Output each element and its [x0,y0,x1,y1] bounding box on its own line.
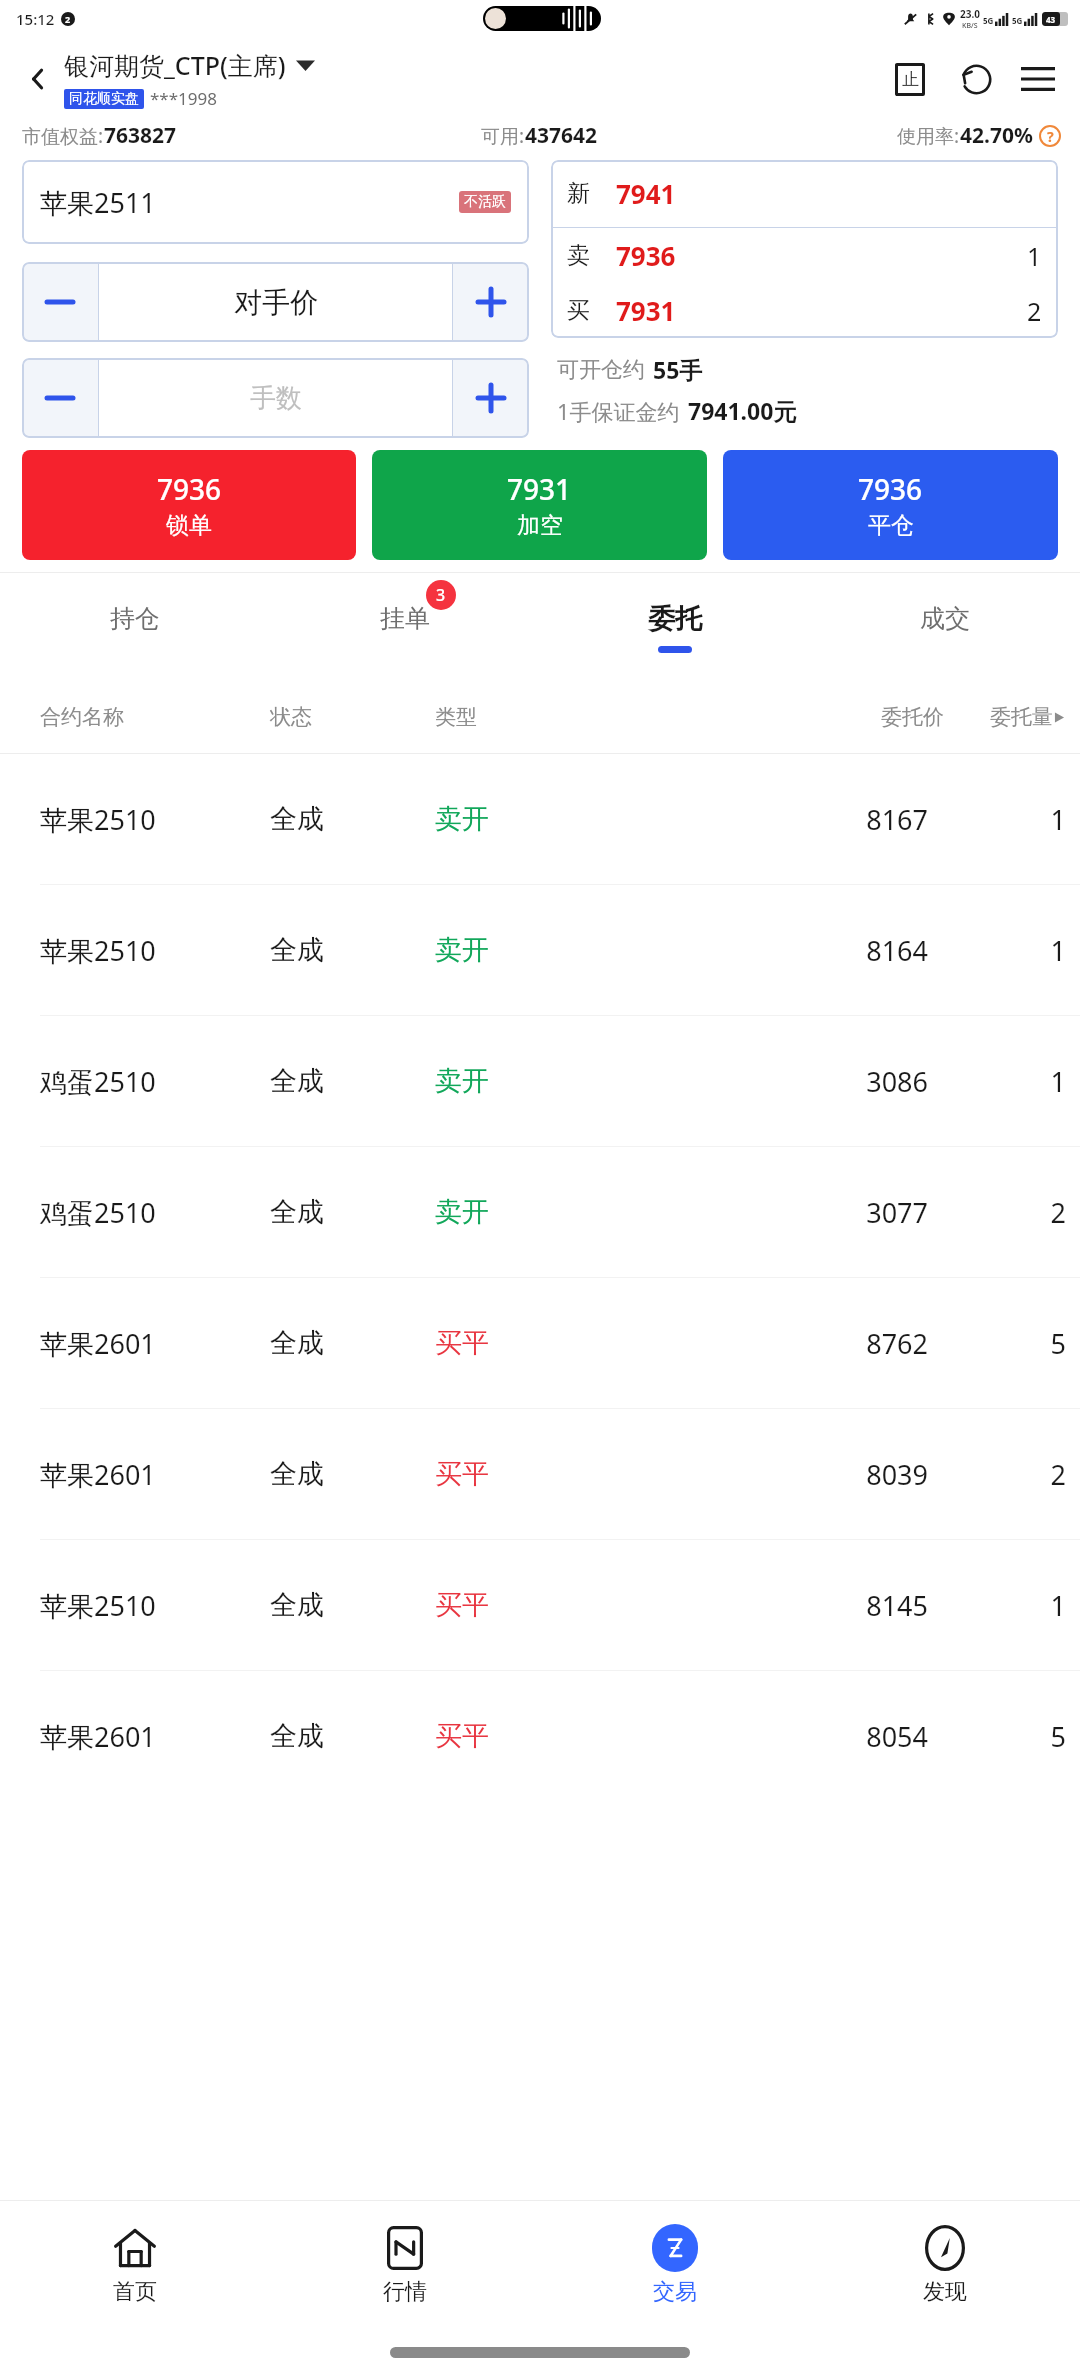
button[interactable]: 苹果2510 [0,754,1080,884]
button[interactable]: 7931 [372,450,707,560]
staticText: 委托量 [990,704,1053,730]
button[interactable]: 苹果2601 [0,1278,1080,1408]
staticText: 8167 [635,801,928,838]
button[interactable]: 鸡蛋2510 [0,1147,1080,1277]
button[interactable]: 苹果2510 [0,885,1080,1015]
staticText: 全成 [270,933,435,967]
staticText: 3 [436,584,446,606]
button[interactable]: 行情 [270,2201,540,2329]
staticText: 5 [974,1325,1066,1362]
button[interactable]: 鸡蛋2510 [0,1016,1080,1146]
staticText: 全成 [270,802,435,836]
staticText: 类型 [435,704,635,730]
button[interactable]: Decrease [22,358,98,438]
button[interactable]: Increase [453,262,529,342]
button[interactable]: 银河期货_CTP(主席) [64,48,315,82]
staticText: 1 [974,1587,1066,1624]
staticText: 新 [567,179,590,208]
staticText: 8145 [635,1587,928,1624]
button[interactable]: 持仓 [0,573,270,681]
staticText: 交易 [653,2278,697,2306]
staticText: ***1998 [150,87,217,110]
button[interactable]: 手数 [99,358,452,438]
staticText: 买 [567,296,590,325]
button[interactable]: 苹果2511 [22,160,529,244]
staticText: 买平 [435,1588,635,1622]
staticText: 5 [974,1718,1066,1755]
staticText: 2 [974,1456,1066,1493]
staticText: 发现 [923,2278,967,2306]
staticText: 全成 [270,1457,435,1491]
button[interactable]: 对手价 [99,262,452,342]
staticText: 卖开 [435,933,635,967]
button[interactable]: 卖 [551,228,1058,283]
staticText: 卖开 [435,1195,635,1229]
staticText: 8164 [635,932,928,969]
button[interactable]: 委托 [540,573,810,681]
button[interactable]: 买 [551,283,1058,338]
button[interactable]: 发现 [810,2201,1080,2329]
button[interactable]: 7936 [723,450,1058,560]
button[interactable]: 苹果2601 [0,1409,1080,1539]
staticText: 苹果2510 [40,1587,270,1624]
staticText: 可用: [481,123,525,149]
button[interactable]: Decrease [22,262,98,342]
staticText: 7936 [616,238,676,273]
staticText: 买平 [435,1719,635,1753]
button[interactable]: 苹果2510 [0,1540,1080,1670]
button[interactable]: 止损设置 [884,53,936,105]
button[interactable]: 7936 [22,450,356,560]
button[interactable]: Back [12,53,64,105]
staticText: 可开仓约 [557,356,645,384]
button[interactable]: Menu [1012,53,1064,105]
staticText: 7941 [616,176,676,211]
staticText: 鸡蛋2510 [40,1063,270,1100]
staticText: 不活跃 [464,193,506,211]
button[interactable]: 挂单 [270,573,540,681]
staticText: 7941.00元 [688,395,797,426]
button[interactable]: 交易 [540,2201,810,2329]
staticText: 委托 [648,602,702,636]
staticText: 苹果2601 [40,1325,270,1362]
staticText: 23.0 [960,7,980,21]
button[interactable]: 首页 [0,2201,270,2329]
button[interactable]: 新 [551,160,1058,227]
staticText: 8039 [635,1456,928,1493]
button[interactable]: 苹果2601 [0,1671,1080,1801]
staticText: KB/S [962,21,978,31]
staticText: 状态 [270,704,435,730]
button[interactable]: Increase [453,358,529,438]
staticText: 全成 [270,1326,435,1360]
staticText: 1 [974,932,1066,969]
staticText: 43 [1046,14,1056,25]
staticText: 苹果2601 [40,1456,270,1493]
staticText: 2 [1027,294,1042,328]
staticText: 鸡蛋2510 [40,1194,270,1231]
button[interactable]: Refresh [950,53,1002,105]
staticText: 成交 [920,603,970,634]
staticText: 同花顺实盘 [69,90,139,108]
staticText: 首页 [113,2278,157,2306]
staticText: 市值权益: [22,123,104,149]
staticText: 2 [974,1194,1066,1231]
button[interactable]: Help [1038,124,1062,148]
staticText: 7936 [157,470,222,508]
staticText: 苹果2601 [40,1718,270,1755]
staticText: 437642 [525,121,598,150]
staticText: 银河期货_CTP(主席) [64,48,286,82]
staticText: 7936 [858,470,923,508]
staticText: 卖 [567,241,590,270]
staticText: 7931 [507,470,572,508]
staticText: 使用率: [897,123,960,149]
button[interactable]: 成交 [810,573,1080,681]
staticText: 对手价 [234,285,318,320]
staticText: 3086 [635,1063,928,1100]
staticText: 锁单 [166,511,212,540]
staticText: 3077 [635,1194,928,1231]
staticText: 卖开 [435,1064,635,1098]
staticText: 加空 [517,511,563,540]
staticText: 2 [65,13,71,25]
staticText: 1 [974,801,1066,838]
staticText: 苹果2510 [40,801,270,838]
staticText: 5G [983,15,994,26]
